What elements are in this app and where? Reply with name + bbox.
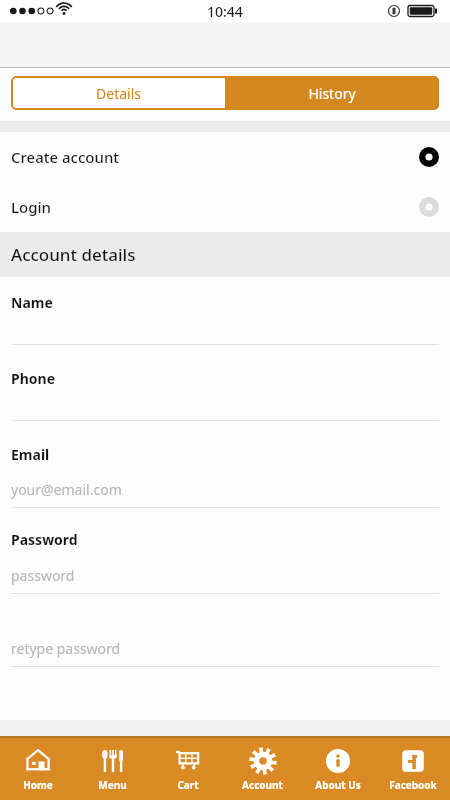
button[interactable]: Details xyxy=(11,76,225,110)
staticText: Home xyxy=(23,778,53,792)
staticText: Email xyxy=(11,445,50,464)
staticText: Phone xyxy=(11,369,56,388)
staticText: retype password xyxy=(11,639,121,658)
button[interactable]: Create account xyxy=(0,132,450,182)
staticText: password xyxy=(11,566,75,585)
staticText: your@email.com xyxy=(11,480,122,499)
staticText: Login xyxy=(11,197,51,217)
button[interactable]: Menu xyxy=(75,738,150,800)
staticText: Name xyxy=(11,293,53,312)
staticText: History xyxy=(308,84,356,103)
staticText: Create account xyxy=(11,147,120,167)
staticText: Account details xyxy=(11,243,136,266)
staticText: Details xyxy=(96,84,141,103)
staticText: Facebook xyxy=(389,778,437,792)
button[interactable]: Login xyxy=(0,182,450,232)
staticText: 10:44 xyxy=(207,2,243,21)
staticText: Account xyxy=(242,778,283,792)
button[interactable]: Home xyxy=(0,738,75,800)
button[interactable]: Facebook xyxy=(375,738,450,800)
button[interactable]: Account xyxy=(225,738,300,800)
button[interactable]: About Us xyxy=(300,738,375,800)
button[interactable]: History xyxy=(225,76,439,110)
button[interactable]: Cart xyxy=(150,738,225,800)
staticText: Password xyxy=(11,530,78,549)
staticText: Cart xyxy=(177,778,199,792)
staticText: About Us xyxy=(315,778,361,792)
staticText: Menu xyxy=(98,778,127,792)
